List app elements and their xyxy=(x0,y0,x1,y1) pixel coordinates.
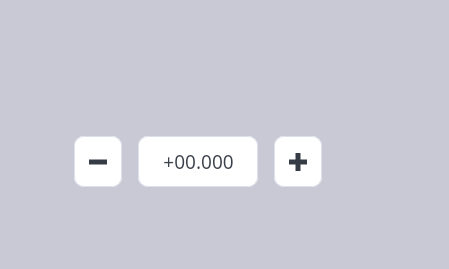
button[interactable]: +00.000 xyxy=(138,136,258,187)
staticText: +00.000 xyxy=(163,149,234,175)
button[interactable]: Decrease xyxy=(74,136,122,187)
button[interactable]: Increase xyxy=(274,136,322,187)
